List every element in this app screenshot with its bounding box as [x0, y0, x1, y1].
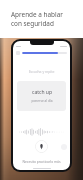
staticText: Escucha y repite: [13, 69, 70, 74]
button[interactable]: [16, 51, 67, 55]
button[interactable]: Opciones: [61, 144, 67, 150]
staticText: ponerse al día: [31, 99, 53, 103]
staticText: Necesito practicarlo más: [22, 159, 61, 163]
button[interactable]: Grabar: [35, 140, 48, 153]
staticText: Aprende a hablar: [11, 10, 63, 19]
button[interactable]: catch up: [17, 81, 66, 111]
button[interactable]: Necesito practicarlo más: [13, 159, 70, 163]
staticText: catch up: [32, 89, 52, 96]
staticText: con seguridad: [11, 19, 54, 28]
